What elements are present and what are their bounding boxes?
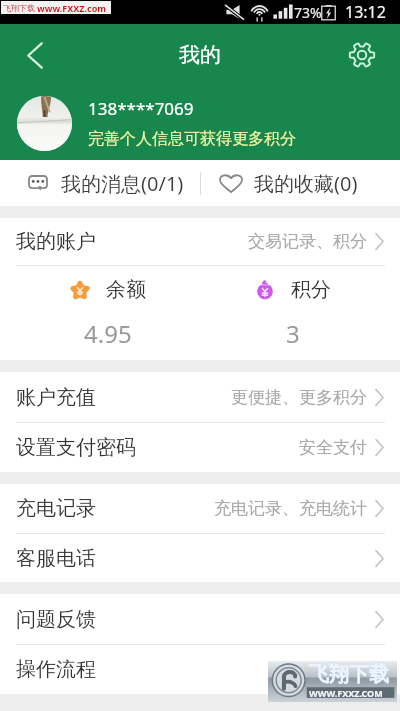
staticText: 客服电话 — [16, 546, 96, 571]
staticText: 飞翔下载 — [309, 662, 389, 687]
button[interactable]: 问题反馈 — [0, 594, 400, 644]
button[interactable]: 充电记录 — [0, 484, 400, 533]
staticText: 3 — [286, 317, 300, 350]
staticText: 飞翔下载 — [3, 3, 35, 13]
button[interactable]: 我的消息(0/1) — [0, 160, 200, 206]
staticText: 交易记录、积分 — [248, 231, 367, 252]
staticText: 完善个人信息可获得更多积分 — [88, 129, 296, 149]
staticText: WWW.FXXZ.COM — [309, 687, 383, 699]
staticText: 更便捷、更多积分 — [231, 387, 367, 408]
staticText: 问题反馈 — [16, 607, 96, 632]
button[interactable]: 操作流程 — [0, 645, 400, 694]
staticText: 73% — [294, 3, 322, 22]
button[interactable]: 我的收藏(0) — [200, 160, 400, 206]
staticText: 操作流程 — [16, 657, 96, 682]
staticText: 积分 — [291, 277, 331, 302]
staticText: 充电记录 — [16, 496, 96, 521]
button[interactable]: 我的账户 — [0, 218, 400, 265]
button[interactable]: Back — [0, 24, 70, 86]
button[interactable]: 积分 — [200, 266, 385, 360]
staticText: www.FXXZ.com — [37, 2, 107, 14]
button[interactable]: 账户充值 — [0, 372, 400, 422]
staticText: 我的账户 — [16, 229, 96, 254]
button[interactable]: 138****7069 — [0, 86, 400, 160]
button[interactable]: 设置支付密码 — [0, 423, 400, 472]
staticText: 我的收藏(0) — [254, 170, 358, 197]
staticText: 余额 — [106, 277, 146, 302]
staticText: 我的消息(0/1) — [61, 170, 184, 197]
button[interactable]: Settings — [336, 24, 388, 86]
staticText: 设置支付密码 — [16, 435, 136, 460]
staticText: 我的 — [179, 42, 221, 68]
staticText: 13:12 — [345, 1, 386, 23]
staticText: 4.95 — [84, 317, 132, 350]
staticText: 安全支付 — [299, 437, 367, 458]
button[interactable]: 余额 — [16, 266, 200, 360]
button[interactable]: 客服电话 — [0, 534, 400, 582]
staticText: 138****7069 — [88, 97, 194, 120]
staticText: 账户充值 — [16, 385, 96, 410]
staticText: 充电记录、充电统计 — [214, 498, 367, 519]
